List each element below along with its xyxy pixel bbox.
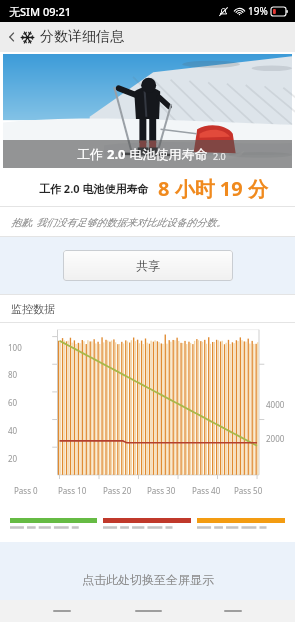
button[interactable]: Recents — [210, 600, 256, 622]
staticText: 分数详细信息 — [40, 28, 124, 46]
staticText: Pass 10 — [58, 485, 87, 496]
button[interactable]: Back — [4, 29, 20, 45]
staticText: 2000 — [266, 433, 285, 444]
staticText: 监控数据 — [11, 302, 55, 316]
staticText: Pass 30 — [147, 485, 176, 496]
staticText: 80 — [8, 369, 18, 380]
staticText: 工作 2.0 电池使用寿命 — [39, 181, 149, 196]
staticText: 抱歉, 我们没有足够的数据来对比此设备的分数。 — [11, 215, 227, 229]
staticText: Pass 0 — [14, 485, 38, 496]
button[interactable]: 点击此处切换至全屏显示 — [0, 558, 295, 600]
button[interactable]: Back — [39, 600, 85, 622]
staticText: 60 — [8, 397, 18, 408]
button[interactable]: 100 — [0, 323, 295, 542]
staticText: 无SIM 09:21 — [9, 4, 72, 19]
staticText: 2.0 — [213, 150, 226, 162]
staticText: 工作 — [77, 145, 107, 163]
staticText: 19% — [248, 4, 268, 18]
staticText: 2.0 — [107, 145, 126, 163]
staticText: Pass 50 — [234, 485, 263, 496]
button[interactable]: Home — [125, 600, 171, 622]
staticText: 4000 — [266, 399, 285, 410]
staticText: 40 — [8, 425, 18, 436]
staticText: 共享 — [136, 258, 160, 273]
button[interactable]: 共享 — [63, 250, 233, 281]
staticText: Pass 20 — [103, 485, 132, 496]
staticText: 电池使用寿命 — [126, 145, 208, 163]
staticText: 8 小时 19 分 — [158, 175, 268, 202]
staticText: 点击此处切换至全屏显示 — [82, 572, 214, 587]
staticText: 100 — [8, 342, 22, 353]
staticText: Pass 40 — [192, 485, 221, 496]
staticText: 20 — [8, 453, 18, 464]
